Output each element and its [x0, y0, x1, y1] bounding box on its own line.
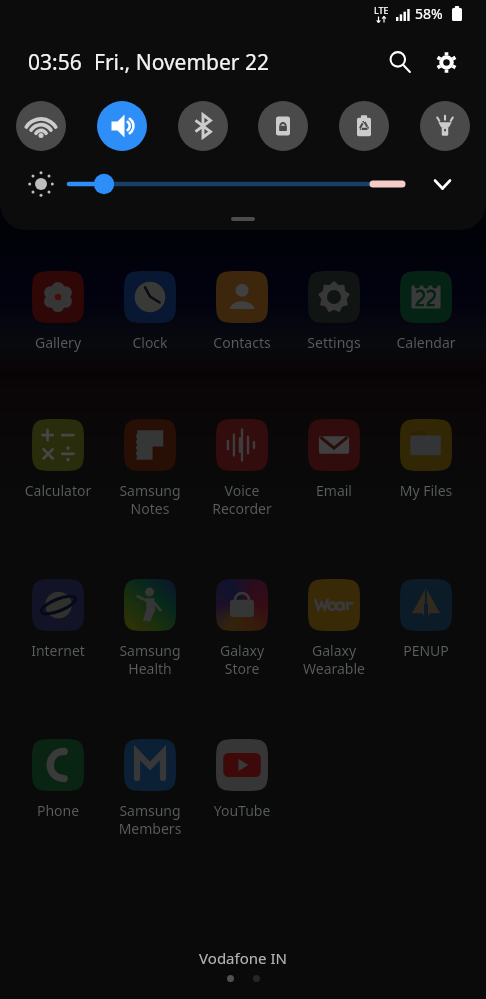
button[interactable]: Samsung Notes: [104, 419, 196, 518]
button[interactable]: YouTube: [196, 739, 288, 820]
staticText: Calendar: [380, 333, 472, 352]
button[interactable]: PENUP: [380, 579, 472, 660]
staticText: Calculator: [12, 481, 104, 500]
staticText: LTE: [374, 4, 389, 16]
staticText: Email: [288, 481, 380, 500]
staticText: Samsung Health: [104, 641, 196, 678]
button[interactable]: Gallery: [12, 271, 104, 352]
button[interactable]: Wi-Fi: [16, 101, 66, 151]
button[interactable]: Galaxy Store: [196, 579, 288, 678]
staticText: PENUP: [380, 641, 472, 660]
button[interactable]: Power saving: [339, 101, 389, 151]
button[interactable]: Expand: [426, 168, 458, 200]
button[interactable]: Clock: [104, 271, 196, 352]
button[interactable]: Calendar: [380, 271, 472, 352]
staticText: Gallery: [12, 333, 104, 352]
button[interactable]: Email: [288, 419, 380, 500]
button[interactable]: Brightness: [25, 168, 57, 200]
button[interactable]: Settings: [288, 271, 380, 352]
button[interactable]: Calculator: [12, 419, 104, 500]
button[interactable]: [60, 167, 414, 201]
button[interactable]: Settings: [428, 44, 464, 80]
button[interactable]: Internet: [12, 579, 104, 660]
button[interactable]: Samsung Health: [104, 579, 196, 678]
button[interactable]: Samsung Members: [104, 739, 196, 838]
button[interactable]: Contacts: [196, 271, 288, 352]
button[interactable]: Search: [382, 44, 418, 80]
staticText: My Files: [380, 481, 472, 500]
button[interactable]: Sound: [97, 101, 147, 151]
staticText: Vodafone IN: [0, 948, 486, 968]
staticText: Settings: [288, 333, 380, 352]
staticText: YouTube: [196, 801, 288, 820]
staticText: Samsung Members: [104, 801, 196, 838]
staticText: Internet: [12, 641, 104, 660]
button[interactable]: Galaxy Wearable: [288, 579, 380, 678]
staticText: Fri., November 22: [94, 48, 270, 77]
button[interactable]: Flashlight: [420, 101, 470, 151]
button[interactable]: Auto rotate: [258, 101, 308, 151]
button[interactable]: My Files: [380, 419, 472, 500]
staticText: Voice Recorder: [196, 481, 288, 518]
staticText: Galaxy Store: [196, 641, 288, 678]
staticText: Contacts: [196, 333, 288, 352]
staticText: Phone: [12, 801, 104, 820]
staticText: 03:56: [28, 48, 82, 77]
button[interactable]: Bluetooth: [178, 101, 228, 151]
staticText: Samsung Notes: [104, 481, 196, 518]
staticText: 58%: [415, 4, 443, 23]
staticText: Clock: [104, 333, 196, 352]
staticText: Galaxy Wearable: [288, 641, 380, 678]
button[interactable]: Phone: [12, 739, 104, 820]
button[interactable]: Voice Recorder: [196, 419, 288, 518]
